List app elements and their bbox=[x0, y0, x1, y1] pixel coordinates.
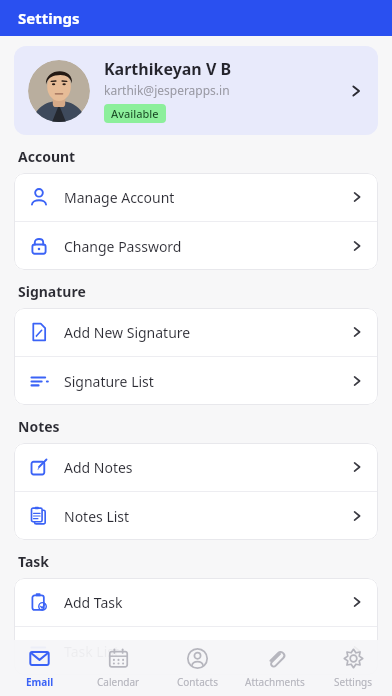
button[interactable]: Change Password bbox=[14, 222, 378, 270]
staticText: Available bbox=[111, 106, 159, 121]
button[interactable]: Contacts bbox=[158, 640, 236, 696]
staticText: Task List bbox=[64, 642, 348, 661]
button[interactable]: Manage Account bbox=[14, 173, 378, 221]
staticText: Task bbox=[18, 552, 50, 571]
button[interactable]: Add Notes bbox=[14, 443, 378, 491]
button[interactable]: Attachments bbox=[236, 640, 314, 696]
button[interactable]: Calendar bbox=[79, 640, 158, 696]
button[interactable]: Notes List bbox=[14, 492, 378, 540]
button[interactable]: Settings bbox=[314, 640, 392, 696]
staticText: Account bbox=[18, 147, 76, 166]
staticText: Email bbox=[26, 675, 54, 689]
staticText: Notes bbox=[18, 417, 60, 436]
staticText: Add Task bbox=[64, 593, 348, 612]
staticText: Signature List bbox=[64, 372, 348, 391]
staticText: Calendar bbox=[97, 675, 140, 689]
button[interactable]: Add New Signature bbox=[14, 308, 378, 356]
staticText: Settings bbox=[18, 8, 80, 28]
button[interactable]: Email bbox=[0, 640, 79, 696]
button[interactable]: Karthikeyan V B bbox=[14, 46, 378, 135]
staticText: Add New Signature bbox=[64, 323, 348, 342]
staticText: Contacts bbox=[177, 675, 218, 689]
button[interactable]: Add Task bbox=[14, 578, 378, 626]
staticText: Signature bbox=[18, 282, 86, 301]
staticText: Karthikeyan V B bbox=[104, 58, 232, 80]
button[interactable]: Task List bbox=[14, 627, 378, 675]
staticText: Attachments bbox=[245, 675, 305, 689]
staticText: Add Notes bbox=[64, 458, 348, 477]
staticText: Manage Account bbox=[64, 188, 348, 207]
staticText: karthik@jesperapps.in bbox=[104, 82, 230, 98]
button[interactable]: Signature List bbox=[14, 357, 378, 405]
staticText: Settings bbox=[334, 675, 373, 689]
staticText: Change Password bbox=[64, 237, 348, 256]
staticText: Notes List bbox=[64, 507, 348, 526]
